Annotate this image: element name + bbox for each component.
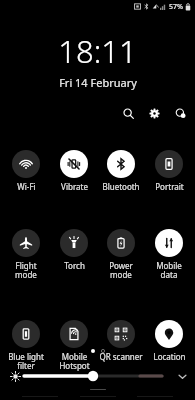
button[interactable]: Bluetooth bbox=[99, 150, 143, 192]
staticText: Vibrate bbox=[61, 181, 88, 192]
staticText: Wi-Fi bbox=[17, 181, 36, 192]
staticText: Bluetooth bbox=[102, 181, 140, 192]
staticText: Fri 14 February bbox=[59, 75, 137, 90]
button[interactable]: Brightness bbox=[24, 369, 172, 383]
staticText: Blue light filter bbox=[8, 351, 44, 372]
button[interactable]: Flight mode bbox=[4, 229, 48, 281]
staticText: 18:11 bbox=[58, 30, 137, 72]
other: Auto brightness bbox=[8, 369, 22, 383]
staticText: Power mode bbox=[109, 260, 133, 281]
button[interactable]: Mobile Hotspot bbox=[52, 320, 96, 372]
button[interactable]: Mobile data bbox=[147, 229, 191, 281]
staticText: Flight mode bbox=[15, 260, 37, 281]
staticText: Portrait bbox=[155, 181, 184, 192]
staticText: 57% bbox=[169, 2, 183, 12]
button[interactable]: Vibrate bbox=[52, 150, 96, 192]
button[interactable]: Torch bbox=[52, 229, 96, 271]
button[interactable]: More options bbox=[171, 104, 189, 122]
button[interactable]: Portrait bbox=[147, 150, 191, 192]
button[interactable]: Blue light filter bbox=[4, 320, 48, 372]
button[interactable]: Search bbox=[119, 104, 137, 122]
button[interactable]: Wi-Fi bbox=[4, 150, 48, 192]
button[interactable]: Settings bbox=[145, 104, 163, 122]
staticText: Location bbox=[153, 351, 186, 362]
button[interactable]: Expand brightness settings bbox=[175, 369, 189, 383]
staticText: Mobile Hotspot bbox=[59, 351, 90, 372]
staticText: Mobile data bbox=[156, 260, 182, 281]
button[interactable]: Location bbox=[147, 320, 191, 362]
staticText: QR scanner bbox=[99, 351, 143, 362]
button[interactable]: QR scanner bbox=[99, 320, 143, 362]
button[interactable]: Power mode bbox=[99, 229, 143, 281]
staticText: Torch bbox=[64, 260, 85, 271]
